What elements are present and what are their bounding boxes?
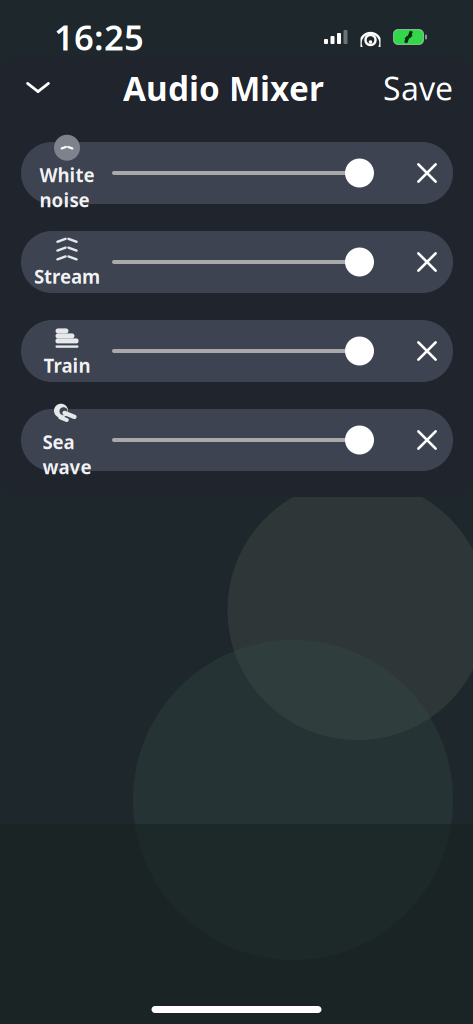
staticText: Train (43, 353, 90, 378)
staticText: 16:25 (54, 14, 144, 60)
button[interactable]: Remove Train (401, 320, 453, 382)
button[interactable]: Save (383, 62, 453, 114)
button[interactable]: Remove Sea wave (401, 409, 453, 471)
staticText: Save (383, 67, 453, 109)
staticText: White noise (39, 163, 94, 212)
staticText: Sea wave (42, 430, 91, 479)
button[interactable]: Remove White noise (401, 142, 453, 204)
button[interactable]: Remove Stream (401, 231, 453, 293)
button[interactable]: Close (12, 62, 64, 114)
staticText: Stream (34, 264, 100, 289)
staticText: Audio Mixer (123, 66, 324, 110)
